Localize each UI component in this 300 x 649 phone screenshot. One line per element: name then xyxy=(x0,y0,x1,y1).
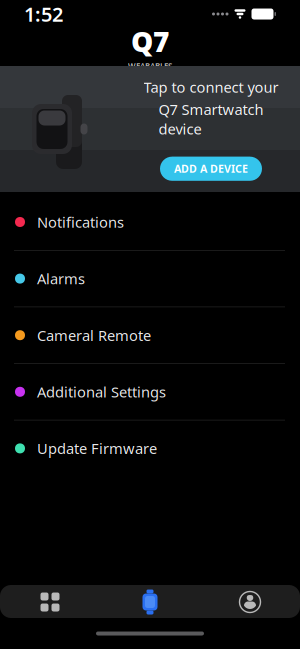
staticText: Cameral Remote xyxy=(37,325,151,345)
staticText: Tap to connect your xyxy=(143,77,278,97)
button[interactable]: Cameral Remote xyxy=(0,307,300,363)
staticText: WEARABLES xyxy=(128,61,172,71)
staticText: Q7 xyxy=(131,23,169,60)
button[interactable]: Tap to connect your xyxy=(0,66,300,192)
staticText: 1:52 xyxy=(24,1,63,27)
button[interactable]: ADD A DEVICE xyxy=(160,157,262,181)
staticText: Alarms xyxy=(37,269,85,288)
button[interactable]: Device xyxy=(100,586,200,618)
button[interactable]: Notifications xyxy=(0,194,300,250)
staticText: Update Firmware xyxy=(37,439,157,458)
staticText: Notifications xyxy=(37,212,124,232)
button[interactable]: Apps xyxy=(0,586,100,618)
staticText: Additional Settings xyxy=(37,382,166,402)
staticText: Q7 Smartwatch device xyxy=(158,100,263,139)
button[interactable]: Alarms xyxy=(0,251,300,307)
staticText: ADD A DEVICE xyxy=(174,162,248,176)
button[interactable]: Additional Settings xyxy=(0,364,300,420)
button[interactable]: Update Firmware xyxy=(0,420,300,476)
button[interactable]: Profile xyxy=(200,586,300,618)
